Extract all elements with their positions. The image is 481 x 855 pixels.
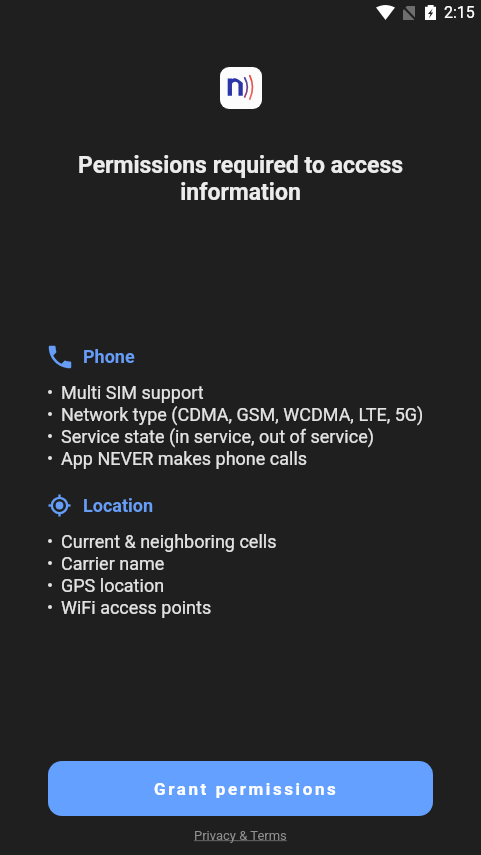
staticText: Permissions required to access informati… bbox=[40, 152, 441, 205]
staticText: Service state (in service, out of servic… bbox=[61, 426, 374, 447]
staticText: Current & neighboring cells bbox=[61, 531, 277, 552]
staticText: Location bbox=[83, 495, 154, 516]
staticText: Network type (CDMA, GSM, WCDMA, LTE, 5G) bbox=[61, 404, 424, 425]
staticText: App NEVER makes phone calls bbox=[61, 448, 308, 469]
staticText: WiFi access points bbox=[61, 597, 212, 618]
staticText: Carrier name bbox=[61, 553, 165, 574]
staticText: GPS location bbox=[61, 575, 165, 596]
staticText: Phone bbox=[83, 346, 135, 367]
button[interactable]: Grant permissions bbox=[48, 761, 433, 816]
staticText: 2:15 bbox=[444, 3, 475, 22]
staticText: Privacy & Terms bbox=[194, 828, 287, 843]
staticText: Multi SIM support bbox=[61, 382, 204, 403]
staticText: Grant permissions bbox=[154, 779, 339, 799]
button[interactable]: Privacy & Terms bbox=[184, 825, 297, 846]
